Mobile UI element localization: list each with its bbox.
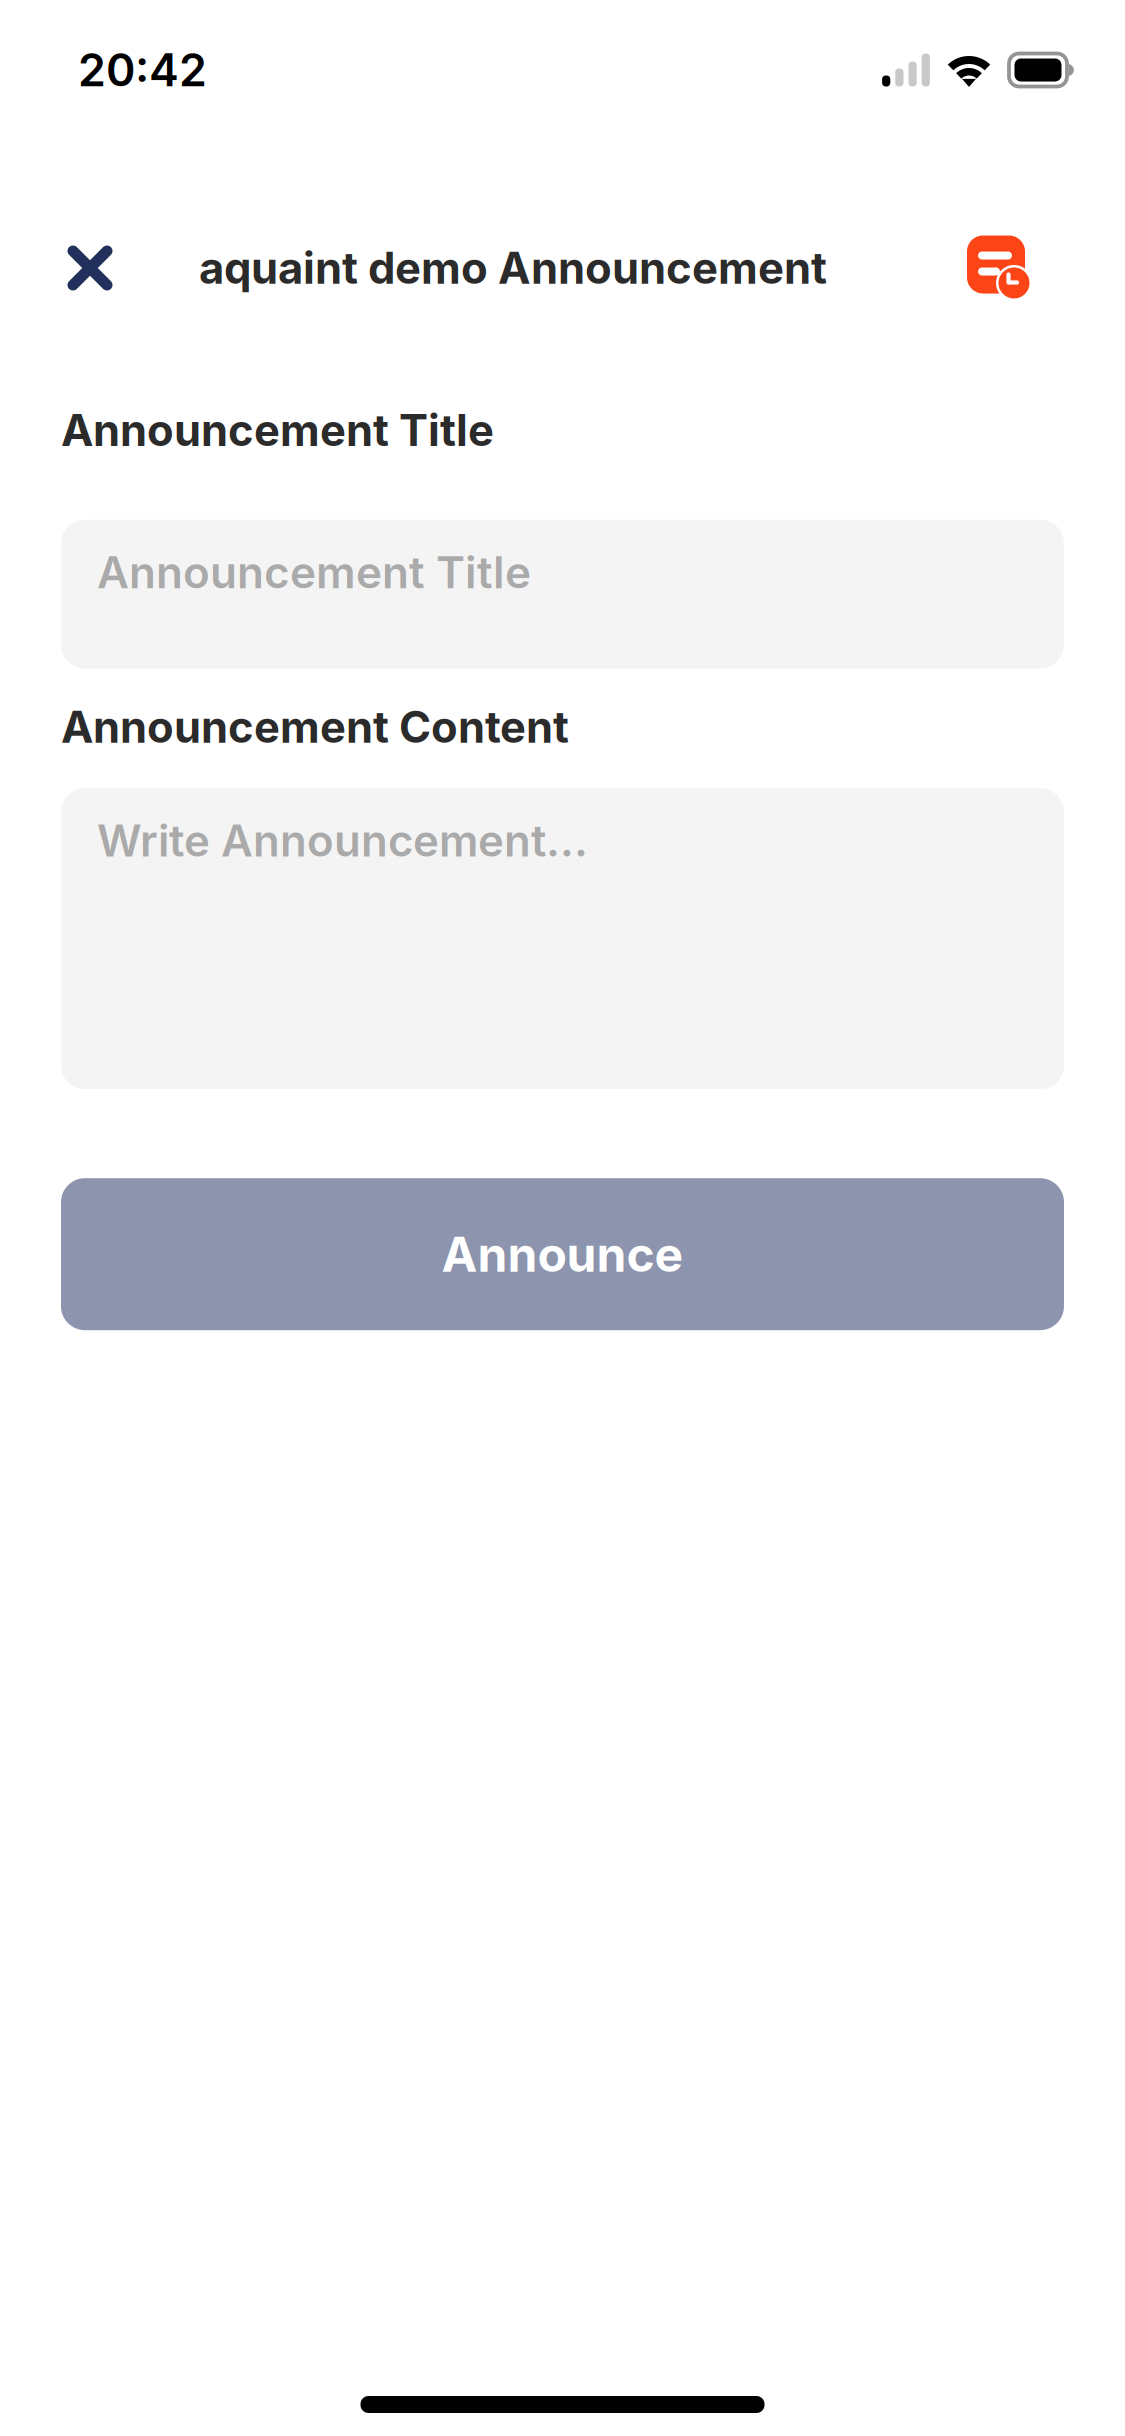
button[interactable]: Announce (61, 1178, 1064, 1330)
button[interactable]: aquaint demo Announcement (199, 222, 827, 314)
staticText: Announcement Title (61, 404, 494, 457)
staticText: aquaint demo Announcement (199, 242, 827, 294)
staticText: Announcement Title (97, 546, 531, 599)
staticText: Announce (441, 1225, 683, 1283)
staticText: Write Announcement... (97, 814, 588, 867)
staticText: 20:42 (78, 43, 207, 97)
button[interactable]: Write Announcement... (61, 788, 1064, 1089)
staticText: Announcement Content (61, 701, 569, 753)
button[interactable]: Announcements (967, 222, 1032, 314)
button[interactable]: Close (56, 222, 124, 314)
button[interactable]: Announcement Title (61, 520, 1064, 669)
